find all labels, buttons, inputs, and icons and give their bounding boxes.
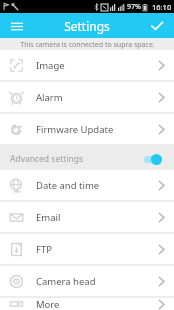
staticText: Email: [36, 211, 61, 224]
button[interactable]: Advanced settings toggle: [142, 152, 164, 166]
staticText: 97%: [127, 2, 141, 12]
button[interactable]: Camera head: [0, 266, 174, 296]
staticText: This camera is connected to supra space.: [20, 40, 155, 50]
button[interactable]: Confirm: [147, 16, 167, 36]
staticText: Camera head: [36, 275, 96, 288]
staticText: Date and time: [36, 179, 100, 192]
staticText: More: [36, 298, 60, 310]
button[interactable]: Date and time: [0, 170, 174, 200]
button[interactable]: Image: [0, 50, 174, 80]
button[interactable]: Email: [0, 202, 174, 232]
button[interactable]: FTP: [0, 234, 174, 264]
staticText: 16:10: [152, 2, 172, 12]
button[interactable]: Alarm: [0, 82, 174, 112]
staticText: Image: [36, 59, 65, 72]
button[interactable]: More: [0, 298, 174, 310]
staticText: Advanced settings: [10, 153, 84, 165]
staticText: Settings: [64, 18, 110, 34]
button[interactable]: Advanced settings: [0, 147, 174, 170]
staticText: FTP: [36, 243, 52, 256]
button[interactable]: Firmware Update: [0, 114, 174, 144]
staticText: Alarm: [36, 91, 63, 104]
staticText: Firmware Update: [36, 123, 114, 136]
button[interactable]: Open navigation menu: [7, 16, 27, 36]
